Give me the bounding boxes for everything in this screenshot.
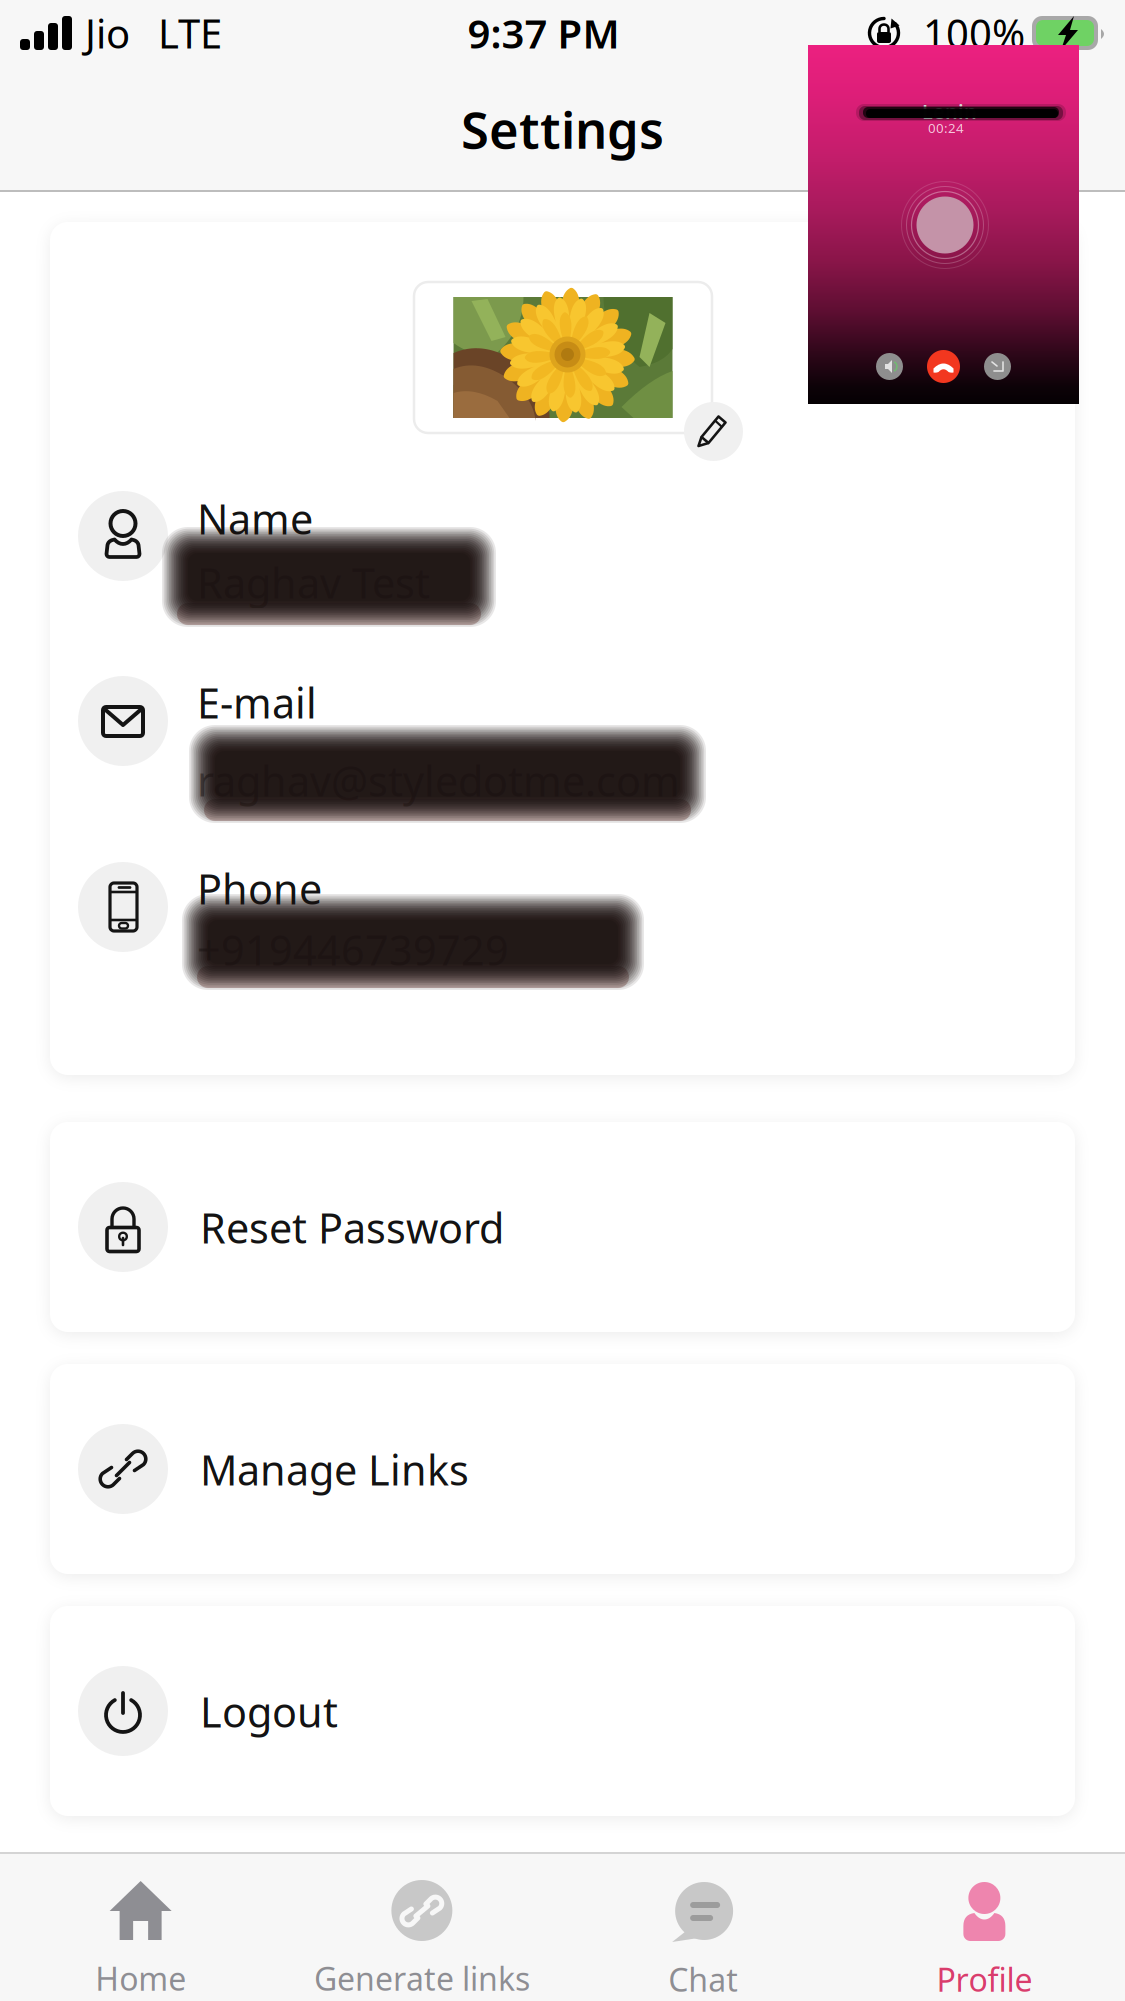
button[interactable]: Home — [0, 1852, 281, 2001]
staticText: LTE — [158, 6, 222, 59]
button[interactable]: Manage Links — [50, 1364, 1075, 1574]
staticText: Reset Password — [200, 1200, 504, 1255]
staticText: Raghav Test — [197, 555, 430, 610]
button[interactable]: Speaker — [876, 353, 903, 380]
staticText: Phone — [197, 861, 322, 916]
staticText: Chat — [668, 1958, 738, 2000]
button[interactable]: Reset Password — [50, 1122, 1075, 1332]
staticText: Logout — [200, 1684, 338, 1739]
staticText: 100% — [923, 6, 1025, 59]
staticText: Jio — [85, 6, 130, 59]
button[interactable]: Generate links — [281, 1852, 562, 2001]
button[interactable]: Chat — [562, 1852, 844, 2001]
staticText: Profile — [936, 1958, 1032, 2000]
staticText: Generate links — [314, 1957, 530, 1999]
staticText: 00:24 — [928, 119, 964, 137]
staticText: Manage Links — [200, 1442, 469, 1497]
staticText: +919446739729 — [197, 922, 509, 977]
staticText: 9:37 PM — [467, 6, 619, 59]
button[interactable]: Edit profile photo — [684, 402, 743, 461]
button[interactable]: Logout — [50, 1606, 1075, 1816]
staticText: Lenin — [922, 98, 977, 125]
staticText: Name — [197, 491, 313, 546]
button[interactable]: Profile — [844, 1852, 1125, 2001]
staticText: Home — [95, 1957, 186, 1999]
button[interactable]: Message — [984, 353, 1011, 380]
staticText: Settings — [461, 95, 664, 163]
staticText: raghav@styledotme.com — [197, 753, 680, 808]
button[interactable]: End call — [927, 350, 960, 383]
staticText: E-mail — [197, 675, 317, 730]
